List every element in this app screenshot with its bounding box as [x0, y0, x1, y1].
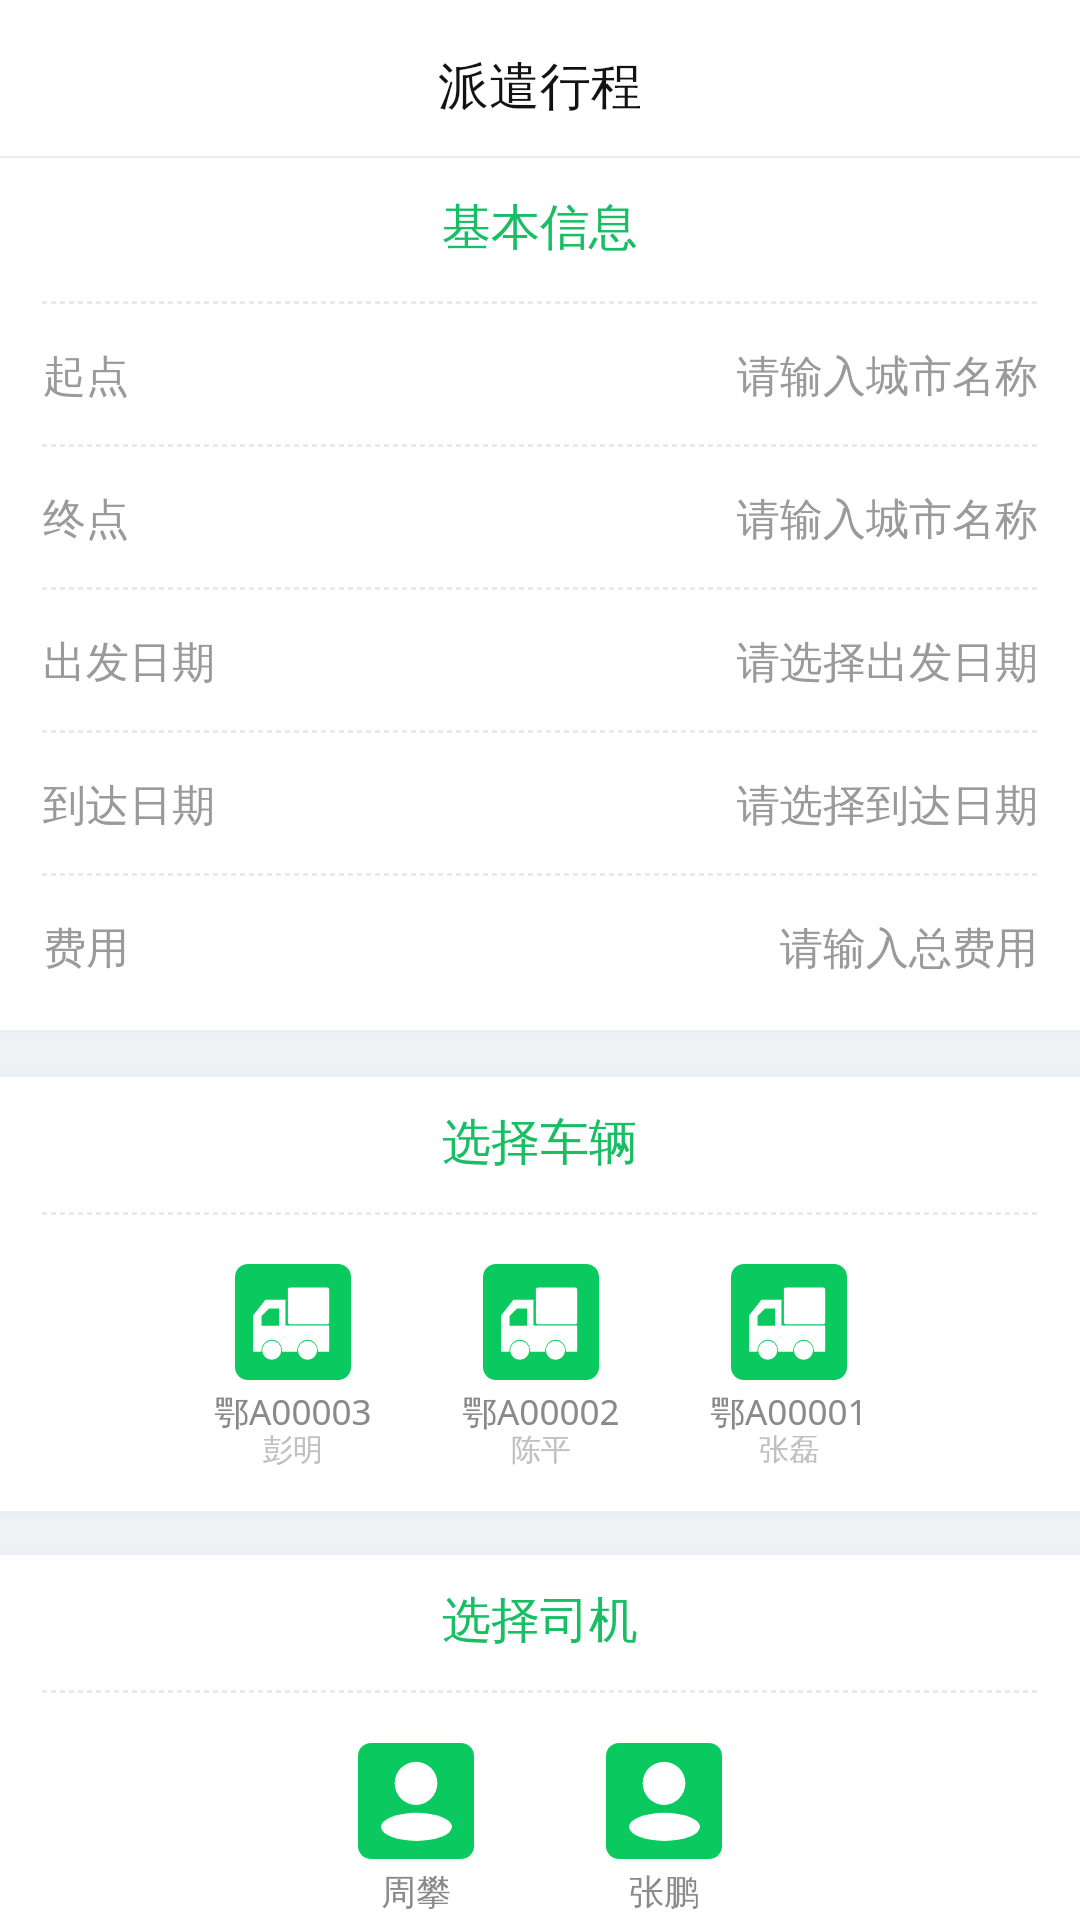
- staticText: 请输入城市名称: [737, 493, 1038, 547]
- staticText: 费用: [43, 922, 129, 976]
- button[interactable]: 终点: [0, 447, 1080, 587]
- button[interactable]: 选择司机 张鹏: [540, 1743, 788, 1920]
- staticText: 出发日期: [43, 636, 215, 690]
- button[interactable]: 出发日期: [0, 590, 1080, 730]
- staticText: 请输入总费用: [780, 922, 1038, 976]
- button[interactable]: 到达日期: [0, 733, 1080, 873]
- staticText: 请选择出发日期: [737, 636, 1038, 690]
- staticText: 张磊: [759, 1431, 819, 1469]
- staticText: 陈平: [511, 1431, 571, 1469]
- button[interactable]: 选择车辆 鄂A00001: [665, 1264, 913, 1474]
- staticText: 鄂A00003: [214, 1388, 372, 1436]
- staticText: 彭明: [263, 1431, 323, 1469]
- staticText: 起点: [43, 350, 129, 404]
- staticText: 基本信息: [442, 197, 638, 259]
- staticText: 终点: [43, 493, 129, 547]
- button[interactable]: 起点: [0, 304, 1080, 444]
- staticText: 派遣行程: [438, 55, 642, 119]
- button[interactable]: 费用: [0, 876, 1080, 1016]
- staticText: 鄂A00002: [462, 1388, 620, 1436]
- button[interactable]: 选择车辆 鄂A00003: [169, 1264, 417, 1474]
- button[interactable]: 选择司机 周攀: [292, 1743, 540, 1920]
- staticText: 请输入城市名称: [737, 350, 1038, 404]
- staticText: 选择司机: [442, 1590, 638, 1652]
- staticText: 到达日期: [43, 779, 215, 833]
- staticText: 张鹏: [629, 1870, 699, 1914]
- staticText: 请选择到达日期: [737, 779, 1038, 833]
- button[interactable]: 选择车辆 鄂A00002: [417, 1264, 665, 1474]
- staticText: 选择车辆: [442, 1112, 638, 1174]
- staticText: 鄂A00001: [710, 1388, 868, 1436]
- staticText: 周攀: [381, 1870, 451, 1914]
